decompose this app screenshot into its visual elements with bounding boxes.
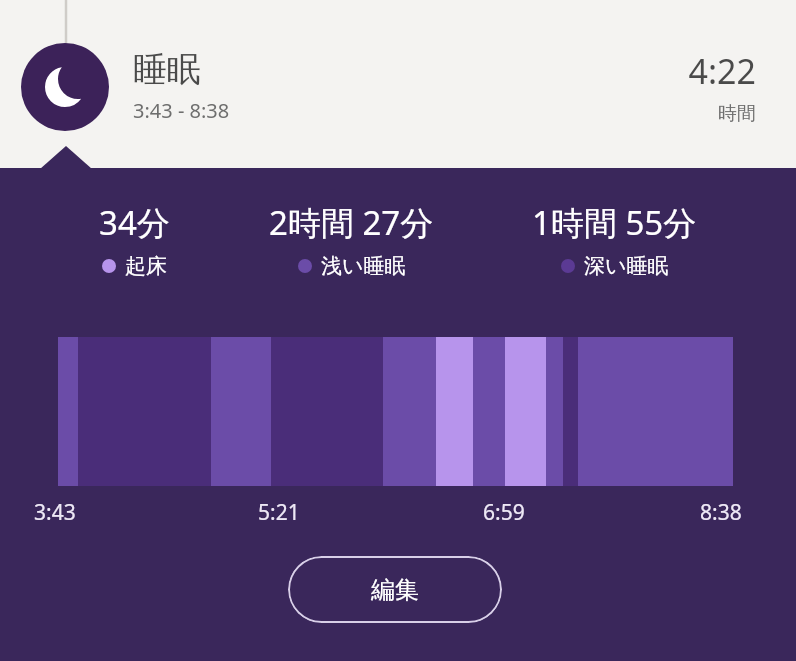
- staticText: 起床: [125, 253, 167, 279]
- staticText: 8:38: [700, 498, 742, 527]
- staticText: 浅い睡眠: [321, 253, 406, 279]
- staticText: 編集: [371, 575, 419, 605]
- other: Sleep: [0, 0, 796, 661]
- staticText: 1時間 55分: [532, 200, 697, 245]
- staticText: 睡眠: [133, 48, 201, 91]
- staticText: 34分: [99, 200, 170, 245]
- staticText: 6:59: [483, 498, 525, 527]
- button[interactable]: 編集: [288, 556, 502, 623]
- staticText: 時間: [718, 102, 756, 126]
- staticText: 5:21: [258, 498, 300, 527]
- staticText: 2時間 27分: [269, 200, 434, 245]
- staticText: 3:43: [34, 498, 76, 527]
- staticText: 4:22: [688, 48, 756, 94]
- staticText: 深い睡眠: [584, 253, 669, 279]
- staticText: 3:43 - 8:38: [133, 97, 230, 124]
